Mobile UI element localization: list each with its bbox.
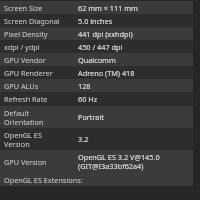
button[interactable]: GPU Renderer bbox=[0, 66, 193, 79]
staticText: 450 / 447 dpi bbox=[78, 42, 123, 52]
staticText: GPU ALUs bbox=[4, 81, 39, 91]
staticText: GPU Vendor bbox=[4, 55, 46, 65]
button[interactable]: xdpi / ydpi bbox=[0, 40, 193, 53]
staticText: 128 bbox=[78, 81, 91, 91]
staticText: Portrait bbox=[78, 112, 104, 122]
staticText: OpenGL ES 3.2 V@145.0 (GIT@I3a33bf62a4) bbox=[78, 152, 160, 171]
button[interactable]: OpenGL ES Extensions: bbox=[0, 173, 193, 186]
staticText: GPU Version bbox=[4, 157, 47, 167]
staticText: GPU Renderer bbox=[4, 68, 53, 78]
button[interactable]: GPU ALUs bbox=[0, 79, 193, 92]
staticText: Adreno (TM) 418 bbox=[78, 68, 135, 78]
staticText: Pixel Density bbox=[4, 29, 48, 39]
button[interactable]: Screen Size bbox=[0, 1, 193, 14]
button[interactable]: GPU Version bbox=[0, 150, 193, 173]
staticText: OpenGL ES Version bbox=[4, 130, 42, 149]
staticText: Qualcomm bbox=[78, 55, 116, 65]
button[interactable]: Refresh Rate bbox=[0, 92, 193, 106]
button[interactable]: OpenGL ES Version bbox=[0, 128, 193, 150]
staticText: 441 dpi (xxhdpi) bbox=[78, 29, 133, 39]
staticText: OpenGL ES Extensions: bbox=[4, 175, 83, 185]
button[interactable]: Default Orientation bbox=[0, 106, 193, 128]
staticText: 5.0 inches bbox=[78, 16, 113, 26]
staticText: 62 mm × 111 mm bbox=[78, 3, 138, 13]
staticText: Refresh Rate bbox=[4, 94, 48, 104]
button[interactable]: GPU Vendor bbox=[0, 53, 193, 66]
staticText: Default Orientation bbox=[4, 108, 44, 127]
staticText: 60 Hz bbox=[78, 94, 98, 104]
button[interactable]: Screen Diagonal bbox=[0, 14, 193, 27]
staticText: xdpi / ydpi bbox=[4, 42, 40, 52]
staticText: Screen Diagonal bbox=[4, 16, 60, 26]
staticText: Screen Size bbox=[4, 3, 43, 13]
staticText: 3.2 bbox=[78, 134, 89, 144]
button[interactable]: Pixel Density bbox=[0, 27, 193, 40]
